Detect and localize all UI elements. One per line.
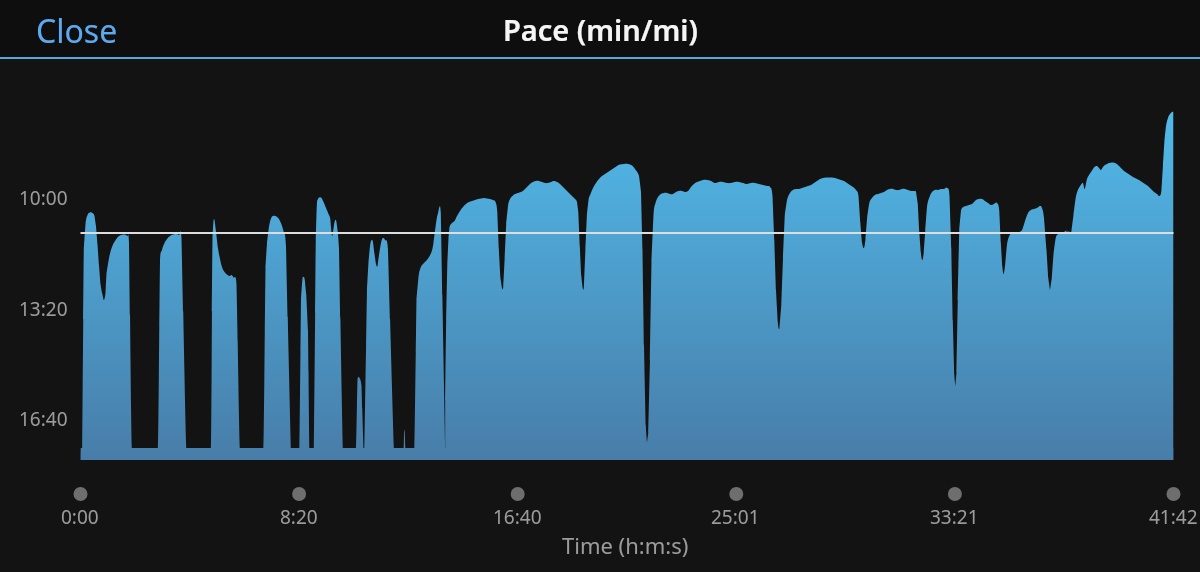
staticText: 10:00 [19, 185, 68, 211]
button[interactable]: Close [0, 0, 144, 58]
staticText: 33:21 [930, 504, 979, 530]
staticText: 0:00 [61, 504, 99, 530]
staticText: 8:20 [280, 504, 318, 530]
staticText: 16:40 [493, 504, 542, 530]
staticText: 16:40 [19, 406, 68, 432]
staticText: 13:20 [19, 296, 68, 322]
staticText: 41:42 [1149, 504, 1198, 530]
staticText: Time (h:m:s) [562, 530, 689, 560]
staticText: Close [36, 9, 118, 49]
staticText: Pace (min/mi) [503, 10, 698, 49]
staticText: 25:01 [711, 504, 760, 530]
